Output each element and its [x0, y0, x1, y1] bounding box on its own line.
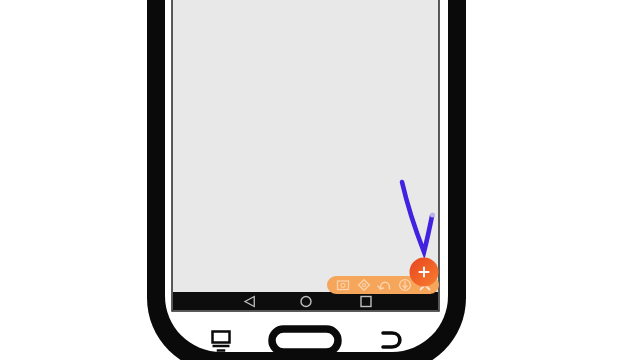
button[interactable]: Add — [409, 257, 439, 287]
button[interactable]: Camera — [333, 276, 353, 294]
button[interactable]: Undo — [375, 276, 395, 294]
button[interactable]: Home button — [268, 327, 342, 355]
button[interactable]: Home — [294, 293, 320, 312]
button[interactable]: Close toolbar — [415, 276, 435, 294]
button[interactable]: Download — [395, 276, 415, 294]
button[interactable]: Recent apps — [354, 293, 380, 312]
button[interactable]: Back — [238, 293, 264, 312]
button[interactable]: Recent apps button — [206, 325, 238, 355]
button[interactable]: Shape tool — [354, 276, 374, 294]
button[interactable]: Back button — [376, 325, 408, 355]
